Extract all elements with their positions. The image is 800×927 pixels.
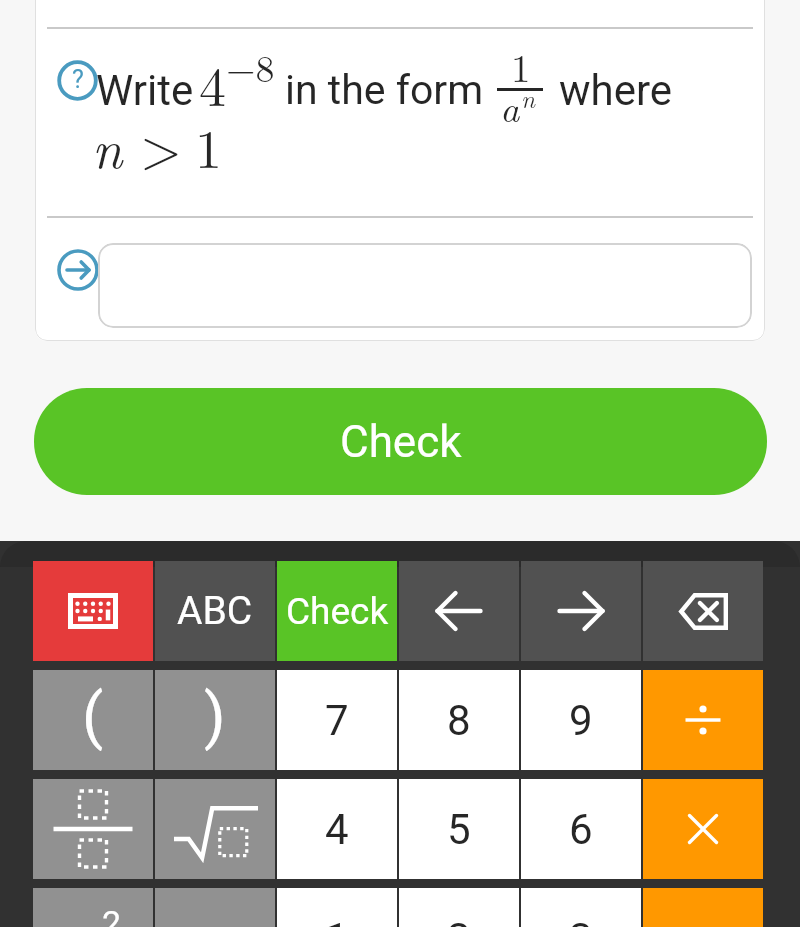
other: Backspace — [679, 593, 728, 630]
button[interactable]: Move right — [521, 561, 641, 661]
button[interactable]: 4 — [277, 779, 397, 879]
button[interactable]: Move left — [399, 561, 519, 661]
staticText: 9 — [569, 696, 593, 745]
staticText: ABC — [177, 588, 253, 634]
staticText: −8 — [226, 39, 275, 93]
staticText: 2 — [447, 914, 471, 927]
button[interactable]: Enter answer — [57, 249, 99, 291]
button[interactable]: Hint — [57, 60, 98, 101]
button[interactable]: Divide — [643, 670, 763, 770]
staticText: ) — [204, 679, 226, 751]
other: Power of two — [58, 907, 128, 927]
button[interactable]: 1 — [277, 888, 397, 927]
button[interactable]: Open parenthesis — [33, 670, 153, 770]
button[interactable]: Close parenthesis — [155, 670, 275, 770]
button[interactable]: Square root — [155, 779, 275, 879]
staticText: ? — [72, 65, 84, 94]
button[interactable] — [98, 243, 752, 328]
button[interactable]: Check — [34, 388, 767, 495]
button[interactable]: Power of two — [33, 888, 153, 927]
button[interactable]: Multiply — [643, 779, 763, 879]
staticText: Write — [96, 66, 194, 115]
staticText: 5 — [447, 805, 471, 854]
other: Move right — [557, 592, 605, 630]
button[interactable]: 3 — [521, 888, 641, 927]
other: Open parenthesis — [73, 684, 113, 756]
staticText: n — [92, 107, 123, 183]
staticText: 4 — [325, 805, 349, 854]
button[interactable]: 6 — [521, 779, 641, 879]
staticText: a — [500, 79, 520, 133]
staticText: 1 — [195, 107, 222, 184]
other: Divide — [680, 697, 726, 743]
staticText: 1 — [511, 38, 531, 93]
other: Multiply — [680, 806, 726, 852]
staticText: 8 — [447, 696, 471, 745]
other: Close parenthesis — [195, 684, 235, 756]
staticText: 7 — [325, 696, 349, 745]
button[interactable]: 8 — [399, 670, 519, 770]
button[interactable]: Backspace — [643, 561, 763, 661]
staticText: in the form — [285, 66, 484, 114]
button[interactable]: Fraction — [33, 779, 153, 879]
staticText: Check — [286, 590, 389, 633]
other: Square root — [174, 806, 258, 860]
staticText: 4 — [199, 45, 226, 122]
button[interactable]: Check — [277, 561, 397, 661]
staticText: ( — [82, 679, 104, 751]
staticText: Check — [340, 416, 462, 468]
staticText: 6 — [569, 805, 593, 854]
staticText: 1 — [325, 914, 349, 927]
staticText: n — [521, 80, 536, 115]
other: Keyboard — [68, 593, 118, 629]
button[interactable]: 5 — [399, 779, 519, 879]
button[interactable]: 9 — [521, 670, 641, 770]
button[interactable]: 7 — [277, 670, 397, 770]
button[interactable]: Keyboard — [33, 561, 153, 661]
other: Fraction — [53, 789, 133, 869]
other: Move left — [435, 592, 483, 630]
staticText: 2 — [102, 903, 122, 927]
staticText: 3 — [569, 914, 593, 927]
button[interactable]: ABC — [155, 561, 275, 661]
staticText: > — [140, 107, 183, 184]
staticText: where — [559, 66, 673, 115]
button[interactable]: 2 — [399, 888, 519, 927]
